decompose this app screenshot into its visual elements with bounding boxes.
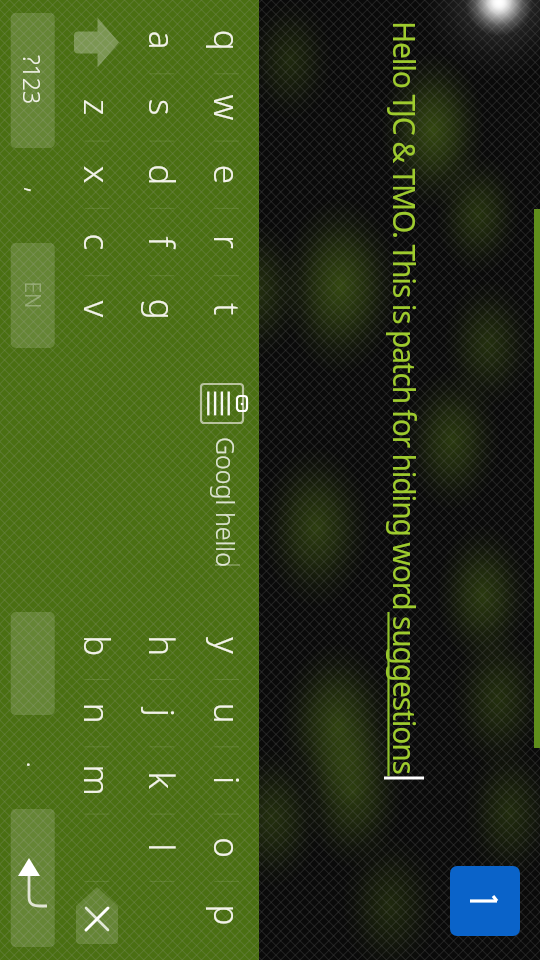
button[interactable]: a: [129, 6, 193, 73]
button[interactable]: o: [194, 814, 258, 881]
button[interactable]: r: [194, 208, 258, 275]
button[interactable]: e: [194, 141, 258, 208]
button[interactable]: t: [194, 275, 258, 342]
button[interactable]: Space: [0, 348, 65, 612]
button[interactable]: Emoji: [0, 612, 65, 715]
button[interactable]: p: [194, 881, 258, 948]
button[interactable]: l: [129, 814, 193, 881]
button[interactable]: Comma: [0, 160, 65, 230]
button[interactable]: j: [129, 679, 193, 746]
button[interactable]: b: [64, 612, 128, 679]
button[interactable]: n: [64, 679, 128, 746]
button[interactable]: x: [64, 141, 128, 208]
button[interactable]: Keyboard settings: [194, 384, 259, 423]
button[interactable]: v: [64, 275, 128, 342]
button[interactable]: y: [194, 612, 258, 679]
button[interactable]: Enter: [0, 809, 65, 947]
button[interactable]: f: [129, 208, 193, 275]
button[interactable]: Message text: [0, 0, 540, 209]
button[interactable]: c: [64, 208, 128, 275]
button[interactable]: Googl hello: [194, 437, 259, 567]
button[interactable]: g: [129, 275, 193, 342]
button[interactable]: i: [194, 746, 258, 813]
button[interactable]: Backspace: [76, 887, 118, 944]
button[interactable]: z: [64, 73, 128, 140]
button[interactable]: s: [129, 73, 193, 140]
button[interactable]: u: [194, 679, 258, 746]
button[interactable]: w: [194, 73, 258, 140]
button[interactable]: Shift: [64, 6, 129, 76]
button[interactable]: Symbols: [0, 13, 65, 148]
button[interactable]: k: [129, 746, 193, 813]
button[interactable]: h: [129, 612, 193, 679]
button[interactable]: m: [64, 746, 128, 813]
button[interactable]: Period: [0, 735, 65, 805]
button[interactable]: q: [194, 6, 258, 73]
button[interactable]: Language: [0, 243, 65, 348]
button[interactable]: Send: [450, 866, 520, 936]
button[interactable]: d: [129, 141, 193, 208]
